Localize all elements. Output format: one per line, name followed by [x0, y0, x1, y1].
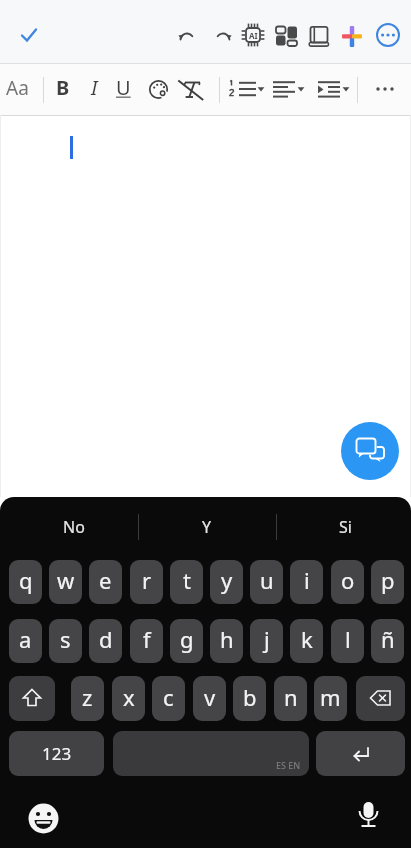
button[interactable]: p — [371, 560, 404, 604]
button[interactable]: i — [290, 560, 323, 604]
button[interactable] — [148, 79, 169, 100]
button[interactable]: t — [170, 560, 203, 604]
staticText: r — [142, 565, 152, 595]
button[interactable]: Aa — [6, 75, 29, 101]
button[interactable] — [9, 676, 55, 721]
button[interactable]: B — [56, 74, 70, 101]
button[interactable]: n — [274, 676, 307, 721]
staticText: q — [19, 565, 33, 595]
staticText: h — [220, 624, 234, 654]
staticText: w — [57, 565, 75, 595]
button[interactable] — [316, 731, 405, 776]
staticText: t — [183, 565, 191, 595]
staticText: No — [63, 516, 85, 538]
button[interactable]: c — [152, 676, 185, 721]
staticText: o — [341, 565, 355, 595]
button[interactable] — [176, 76, 206, 102]
button[interactable] — [341, 422, 399, 480]
button[interactable] — [306, 24, 330, 48]
button[interactable]: y — [210, 560, 243, 604]
staticText: AI — [249, 30, 258, 41]
staticText: x — [123, 682, 135, 712]
button[interactable]: v — [193, 676, 226, 721]
staticText: n — [284, 682, 298, 712]
staticText: f — [143, 624, 151, 654]
staticText: b — [243, 682, 257, 712]
staticText: l — [345, 624, 351, 654]
button[interactable]: Y — [147, 505, 267, 549]
staticText: Si — [339, 516, 352, 538]
staticText: z — [82, 682, 93, 712]
button[interactable]: ñ — [371, 619, 404, 663]
button[interactable]: ES EN — [113, 731, 309, 776]
staticText: k — [301, 624, 313, 654]
button[interactable]: d — [89, 619, 122, 663]
button[interactable] — [356, 676, 405, 721]
button[interactable]: q — [9, 560, 42, 604]
button[interactable]: k — [290, 619, 323, 663]
button[interactable] — [316, 78, 356, 100]
staticText: j — [264, 624, 270, 654]
staticText: g — [180, 624, 194, 654]
staticText: a — [19, 624, 32, 654]
button[interactable]: AI — [239, 21, 267, 49]
staticText: s — [60, 624, 71, 654]
button[interactable]: r — [130, 560, 163, 604]
button[interactable] — [228, 78, 268, 100]
button[interactable]: z — [71, 676, 104, 721]
button[interactable]: No — [14, 505, 134, 549]
button[interactable]: f — [130, 619, 163, 663]
staticText: y — [221, 565, 233, 595]
staticText: u — [260, 565, 274, 595]
staticText: c — [163, 682, 174, 712]
button[interactable]: x — [112, 676, 145, 721]
staticText: i — [304, 565, 310, 595]
button[interactable] — [271, 78, 311, 100]
button[interactable] — [274, 24, 298, 48]
button[interactable]: m — [314, 676, 347, 721]
button[interactable]: 123 — [9, 731, 104, 776]
button[interactable]: w — [49, 560, 82, 604]
staticText: d — [99, 624, 113, 654]
staticText: ES EN — [276, 759, 301, 771]
staticText: Y — [202, 516, 212, 538]
button[interactable] — [353, 800, 386, 833]
button[interactable]: j — [250, 619, 283, 663]
staticText: v — [204, 682, 216, 712]
button[interactable]: U — [116, 74, 131, 101]
button[interactable] — [340, 24, 364, 48]
button[interactable]: h — [210, 619, 243, 663]
button[interactable] — [211, 24, 235, 48]
button[interactable] — [376, 23, 400, 47]
button[interactable]: a — [9, 619, 42, 663]
button[interactable] — [175, 24, 199, 48]
button[interactable]: b — [233, 676, 266, 721]
button[interactable] — [370, 78, 400, 100]
button[interactable]: u — [250, 560, 283, 604]
button[interactable]: Si — [285, 505, 405, 549]
button[interactable]: I — [91, 74, 98, 101]
button[interactable]: e — [89, 560, 122, 604]
staticText: p — [381, 565, 395, 595]
staticText: ñ — [381, 624, 395, 654]
button[interactable]: o — [331, 560, 364, 604]
button[interactable]: l — [331, 619, 364, 663]
button[interactable] — [27, 802, 60, 835]
button[interactable]: g — [170, 619, 203, 663]
button[interactable] — [16, 23, 42, 49]
button[interactable]: s — [49, 619, 82, 663]
staticText: e — [99, 565, 112, 595]
staticText: m — [320, 682, 341, 712]
staticText: 123 — [42, 742, 72, 765]
